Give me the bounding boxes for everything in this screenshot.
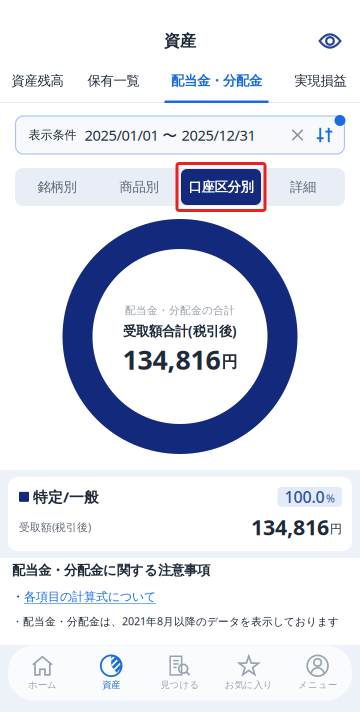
staticText: 円 bbox=[221, 352, 237, 372]
staticText: 口座区分別 bbox=[188, 179, 253, 195]
button[interactable]: 資産残高 bbox=[0, 61, 75, 103]
staticText: 表示条件 bbox=[28, 128, 76, 142]
staticText: 配当金・分配金の合計 bbox=[125, 304, 235, 317]
button[interactable]: 配当金・分配金 bbox=[152, 61, 281, 103]
staticText: ・配当金・分配金は、2021年8月以降のデータを表示しております bbox=[12, 614, 339, 628]
button[interactable]: お気に入り bbox=[214, 649, 283, 697]
button[interactable]: 口座区分別 bbox=[181, 169, 261, 205]
staticText: 100.0 bbox=[284, 486, 324, 507]
button[interactable]: 保有一覧 bbox=[75, 61, 152, 103]
button[interactable]: 詳細 bbox=[262, 169, 344, 205]
staticText: 受取額(税引後) bbox=[19, 520, 91, 534]
staticText: 見つける bbox=[160, 679, 199, 691]
staticText: 銘柄別 bbox=[37, 179, 76, 195]
button[interactable]: 資産 bbox=[77, 649, 146, 697]
button[interactable]: 実現損益 bbox=[281, 61, 360, 103]
staticText: 134,816 bbox=[251, 513, 329, 541]
staticText: 資産 bbox=[102, 679, 120, 691]
staticText: 詳細 bbox=[290, 179, 316, 195]
staticText: 2025/01/01 〜 2025/12/31 bbox=[84, 125, 255, 145]
staticText: 受取額合計(税引後) bbox=[123, 322, 237, 340]
button[interactable]: 商品別 bbox=[98, 169, 180, 205]
button[interactable]: ホーム bbox=[8, 649, 77, 697]
button[interactable]: 見つける bbox=[146, 649, 214, 697]
staticText: お気に入り bbox=[225, 679, 273, 691]
staticText: 配当金・分配金 bbox=[171, 73, 262, 89]
staticText: 円 bbox=[330, 522, 342, 536]
staticText: 実現損益 bbox=[294, 73, 346, 89]
staticText: % bbox=[326, 491, 335, 505]
button[interactable]: 特定/一般 bbox=[8, 477, 352, 551]
staticText: 保有一覧 bbox=[87, 73, 139, 89]
staticText: メニュー bbox=[298, 679, 337, 691]
staticText: 資産 bbox=[164, 31, 196, 51]
staticText: 商品別 bbox=[119, 179, 158, 195]
staticText: 特定/一般 bbox=[33, 487, 99, 507]
staticText: 134,816 bbox=[122, 342, 220, 377]
button[interactable]: 表示条件 bbox=[15, 116, 344, 154]
staticText: ホーム bbox=[28, 679, 57, 691]
button[interactable]: メニュー bbox=[283, 649, 352, 697]
staticText: 配当金・分配金に関する注意事項 bbox=[12, 562, 210, 578]
staticText: 各項目の計算式について bbox=[24, 589, 156, 604]
button[interactable]: ・ bbox=[12, 589, 156, 604]
staticText: ・ bbox=[12, 589, 24, 604]
button[interactable]: 銘柄別 bbox=[16, 169, 98, 205]
staticText: 資産残高 bbox=[11, 73, 63, 89]
button[interactable]: 残高の表示切替 bbox=[308, 24, 352, 58]
